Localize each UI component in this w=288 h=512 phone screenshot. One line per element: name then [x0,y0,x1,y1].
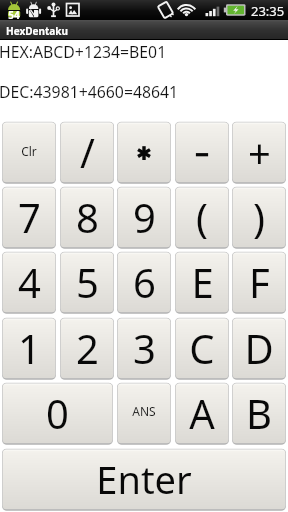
staticText: 54 [8,8,20,22]
button[interactable] [117,121,171,184]
staticText: C [189,321,215,375]
staticText: 6 [133,255,156,309]
staticText: 5 [76,255,99,309]
button[interactable]: 7 [2,186,56,249]
button[interactable]: ( [175,186,229,249]
staticText: F [249,255,270,309]
button[interactable]: 6 [117,251,171,314]
button[interactable]: + [232,121,286,184]
staticText: 2 [76,321,99,375]
staticText: ) [253,190,265,244]
button[interactable]: E [175,251,229,314]
staticText: HexDentaku [6,24,69,38]
button[interactable]: 1 [2,317,56,380]
staticText: B [246,386,272,440]
button[interactable]: C [175,317,229,380]
button[interactable]: B [232,382,286,445]
button[interactable] [175,121,229,184]
staticText: ANS [132,403,156,419]
button[interactable]: 2 [60,317,114,380]
button[interactable]: Clr [2,121,56,184]
staticText: DEC:43981+4660=48641 [0,81,179,103]
staticText: / [80,125,95,179]
button[interactable]: ANS [117,382,171,445]
button[interactable]: 5 [60,251,114,314]
button[interactable]: Enter [2,448,286,511]
button[interactable]: D [232,317,286,380]
button[interactable]: 9 [117,186,171,249]
staticText: A [189,386,215,440]
staticText: 3 [133,321,156,375]
staticText: Enter [96,453,192,505]
staticText: 8 [76,190,99,244]
staticText: E [191,255,214,309]
staticText: 9 [133,190,156,244]
button[interactable]: 0 [2,382,113,445]
staticText: + [248,125,271,179]
staticText: ( [196,190,208,244]
staticText: 1 [18,321,41,375]
button[interactable]: ) [232,186,286,249]
staticText: 0 [46,386,69,440]
staticText: HEX:ABCD+1234=BE01 [0,41,167,63]
staticText: D [244,321,274,375]
staticText: 7 [18,190,41,244]
staticText: 23:35 [251,2,285,20]
staticText: Clr [21,143,37,159]
button[interactable]: 4 [2,251,56,314]
button[interactable]: 3 [117,317,171,380]
button[interactable]: 8 [60,186,114,249]
button[interactable]: / [60,121,114,184]
staticText: 4 [18,255,41,309]
button[interactable]: F [232,251,286,314]
button[interactable]: A [175,382,229,445]
